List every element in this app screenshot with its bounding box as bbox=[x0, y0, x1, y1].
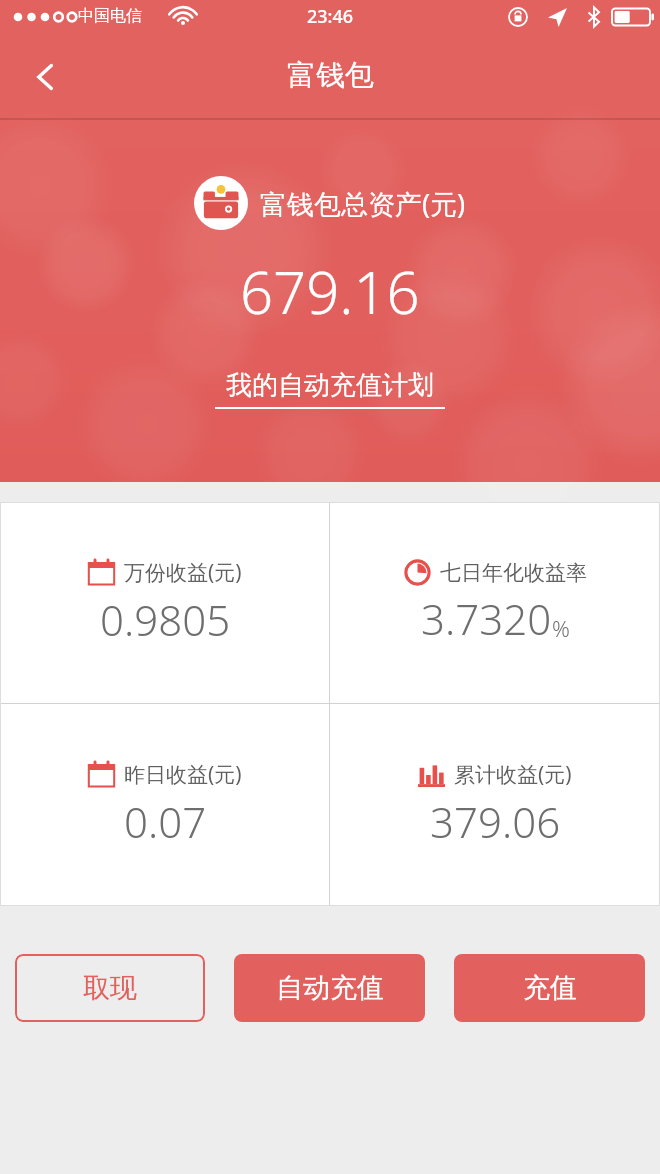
button[interactable]: 累计收益(元) bbox=[330, 704, 660, 906]
button[interactable]: 七日年化收益率 bbox=[330, 502, 660, 703]
button[interactable]: 万份收益(元) bbox=[0, 502, 329, 703]
button[interactable]: 昨日收益(元) bbox=[0, 704, 329, 906]
staticText: 3.7320 bbox=[421, 590, 552, 647]
staticText: 昨日收益(元) bbox=[124, 760, 242, 789]
button[interactable]: 我的自动充值计划 bbox=[215, 369, 445, 409]
staticText: 23:46 bbox=[307, 4, 354, 29]
button[interactable]: 取现 bbox=[15, 954, 205, 1022]
staticText: 取现 bbox=[83, 971, 137, 1005]
staticText: 七日年化收益率 bbox=[440, 560, 587, 586]
staticText: 0.07 bbox=[124, 793, 207, 850]
staticText: 自动充值 bbox=[276, 971, 384, 1005]
staticText: 万份收益(元) bbox=[124, 558, 242, 587]
button[interactable]: 充值 bbox=[454, 954, 645, 1022]
staticText: 我的自动充值计划 bbox=[226, 369, 434, 402]
staticText: % bbox=[552, 613, 570, 643]
staticText: 679.16 bbox=[240, 252, 420, 331]
button[interactable]: 自动充值 bbox=[234, 954, 425, 1022]
staticText: 富钱包总资产(元) bbox=[260, 185, 466, 222]
staticText: 充值 bbox=[523, 971, 577, 1005]
staticText: 379.06 bbox=[430, 793, 561, 850]
staticText: 累计收益(元) bbox=[454, 760, 572, 789]
staticText: 中国电信 bbox=[78, 6, 142, 26]
staticText: 0.9805 bbox=[100, 591, 231, 648]
button[interactable]: Back bbox=[0, 34, 92, 120]
staticText: 富钱包 bbox=[287, 57, 374, 94]
